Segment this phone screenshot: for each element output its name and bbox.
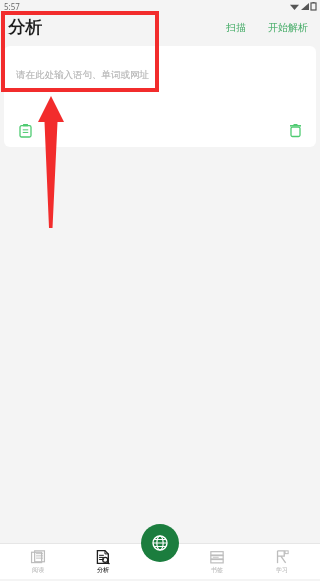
button[interactable]: 阅读 [12,544,64,579]
staticText: 学习 [276,566,288,574]
button[interactable]: 学习 [256,544,308,579]
button[interactable]: Paste from clipboard [12,117,38,143]
staticText: 分析 [97,566,109,574]
button[interactable]: 书签 [191,544,243,579]
staticText: 阅读 [32,566,44,574]
staticText: 分析 [8,17,42,38]
staticText: 开始解析 [268,21,308,34]
button[interactable]: 请在此处输入语句、单词或网址 [4,46,316,116]
staticText: 扫描 [226,21,246,34]
button[interactable]: Translate web page [141,524,179,562]
button[interactable]: 开始解析 [262,17,314,38]
staticText: 书签 [211,566,223,574]
button[interactable]: 分析 [77,544,129,579]
button[interactable]: 扫描 [220,17,252,38]
button[interactable]: Clear text [282,117,308,143]
staticText: 请在此处输入语句、单词或网址 [16,69,149,81]
staticText: 5:57 [4,1,20,12]
